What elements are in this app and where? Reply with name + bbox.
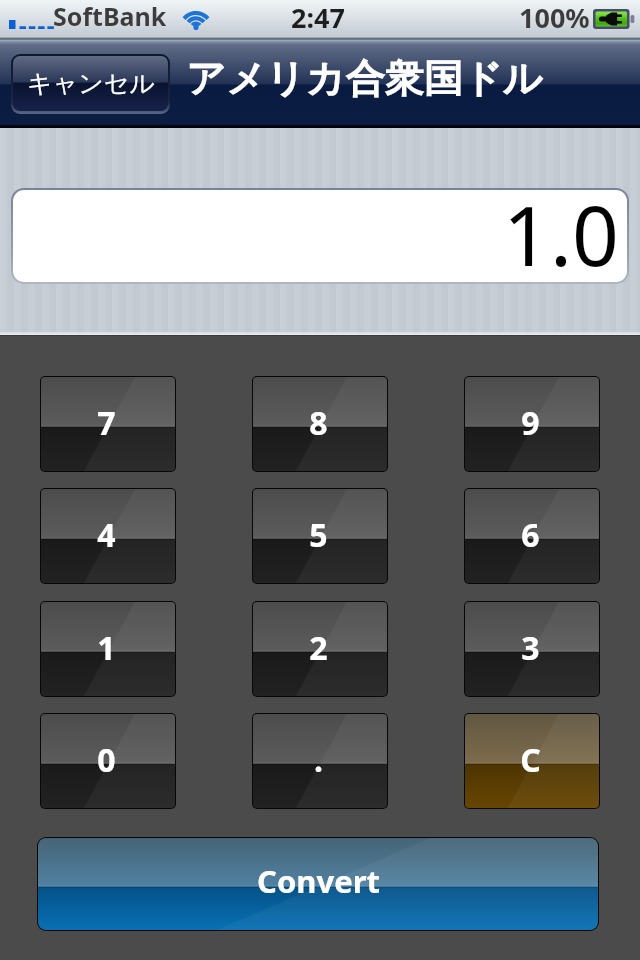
staticText: C (520, 738, 541, 782)
staticText: 4 (97, 513, 116, 557)
button[interactable]: 6 (465, 489, 599, 583)
staticText: アメリカ合衆国ドル (186, 54, 543, 103)
staticText: 2:47 (291, 0, 345, 36)
button[interactable]: 4 (41, 489, 175, 583)
staticText: . (314, 738, 323, 782)
staticText: 8 (309, 401, 328, 445)
staticText: 5 (309, 513, 328, 557)
button[interactable]: 7 (41, 377, 175, 471)
staticText: 6 (521, 513, 540, 557)
staticText: 9 (521, 401, 540, 445)
staticText: キャンセル (27, 68, 155, 99)
button[interactable]: Convert (38, 838, 598, 930)
button[interactable]: キャンセル (13, 56, 168, 111)
button[interactable]: Amount input field (13, 190, 627, 282)
button[interactable]: C (465, 714, 599, 808)
button[interactable]: 9 (465, 377, 599, 471)
button[interactable]: 5 (253, 489, 387, 583)
button[interactable]: . (253, 714, 387, 808)
button[interactable]: 3 (465, 602, 599, 696)
staticText: SoftBank (53, 0, 167, 33)
staticText: 0 (97, 738, 116, 782)
staticText: 100% (519, 0, 590, 36)
staticText: 7 (97, 401, 116, 445)
staticText: Convert (257, 860, 380, 902)
staticText: 2 (309, 626, 328, 670)
button[interactable]: 2 (253, 602, 387, 696)
button[interactable]: 0 (41, 714, 175, 808)
staticText: 3 (521, 626, 540, 670)
button[interactable]: 8 (253, 377, 387, 471)
staticText: 1.0 (503, 190, 619, 270)
button[interactable]: 1 (41, 602, 175, 696)
staticText: 1 (97, 626, 116, 670)
